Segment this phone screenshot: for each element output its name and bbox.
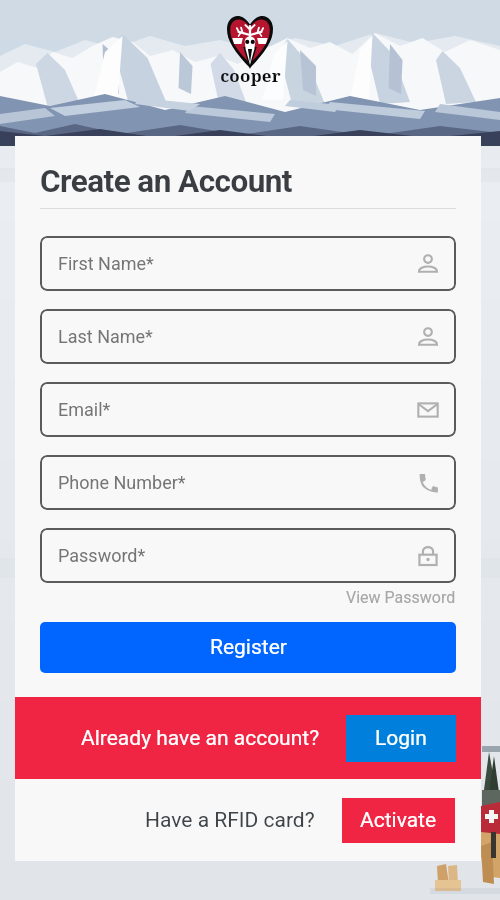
other: Name [417, 326, 439, 348]
staticText: Have a RFID card? [145, 808, 315, 833]
staticText: Register [210, 635, 287, 660]
button[interactable]: Email* [40, 382, 456, 437]
staticText: Login [375, 726, 427, 751]
other: Password [417, 545, 439, 567]
staticText: Phone Number* [58, 472, 186, 493]
button[interactable]: View Password [346, 588, 456, 607]
staticText: Create an Account [40, 163, 292, 200]
other: Phone number [417, 472, 439, 494]
staticText: Already have an account? [81, 726, 320, 751]
staticText: cooper [220, 64, 281, 87]
staticText: Email* [58, 399, 111, 420]
staticText: Last Name* [58, 326, 153, 347]
button[interactable]: Activate [342, 798, 455, 843]
staticText: Password* [58, 545, 146, 566]
button[interactable]: Last Name* [40, 309, 456, 364]
button[interactable]: First Name* [40, 236, 456, 291]
button[interactable]: Password* [40, 528, 456, 583]
other: Name [417, 253, 439, 275]
button[interactable]: Register [40, 622, 456, 673]
other: Email [417, 399, 439, 421]
staticText: Activate [360, 808, 437, 833]
button[interactable]: Phone Number* [40, 455, 456, 510]
button[interactable]: Login [346, 715, 456, 762]
staticText: First Name* [58, 253, 154, 274]
